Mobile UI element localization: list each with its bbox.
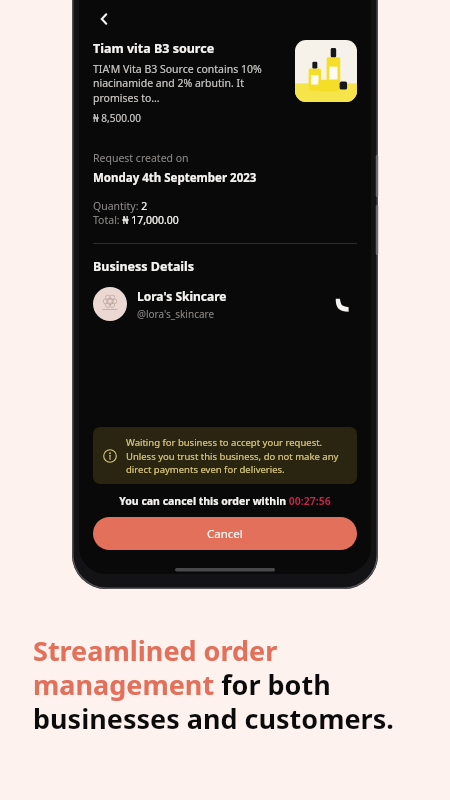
staticText: Cancel (207, 526, 243, 542)
staticText: Request created on (93, 151, 189, 165)
button[interactable]: Call business (327, 289, 357, 319)
staticText: You can cancel this order within 00:27:5… (93, 494, 357, 508)
staticText: Tiam vita B3 source (93, 40, 215, 57)
staticText: Monday 4th September 2023 (93, 170, 257, 186)
staticText: ₦ 8,500.00 (93, 111, 141, 125)
staticText: Waiting for business to accept your requ… (126, 436, 347, 475)
staticText: Business Details (93, 258, 195, 275)
staticText: Streamlined order management for both bu… (33, 632, 394, 737)
button[interactable]: Cancel (93, 517, 357, 550)
staticText: TIA'M Vita B3 Source contains 10% niacin… (93, 62, 283, 105)
button[interactable]: Back (89, 4, 119, 34)
button[interactable]: Lora's Skincare (93, 287, 357, 321)
staticText: Lora's Skincare (137, 288, 227, 304)
staticText: Total: ₦ 17,000.00 (93, 213, 179, 227)
staticText: @lora's_skincare (137, 307, 215, 321)
staticText: Quantity: 2 (93, 199, 148, 213)
